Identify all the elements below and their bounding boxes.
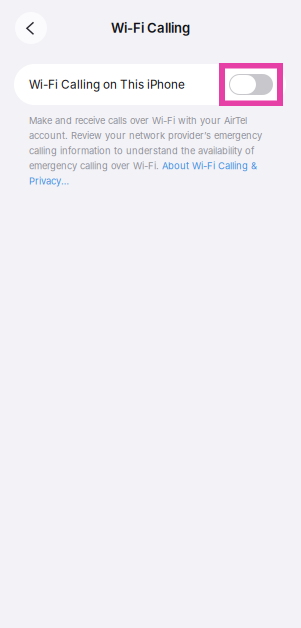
button[interactable]: Back <box>15 12 47 44</box>
staticText: Wi-Fi Calling on This iPhone <box>29 77 185 91</box>
button[interactable]: Wi-Fi Calling on This iPhone <box>219 63 283 106</box>
staticText: Make and receive calls over Wi-Fi with y… <box>29 113 262 189</box>
staticText: Wi-Fi Calling <box>111 20 190 36</box>
